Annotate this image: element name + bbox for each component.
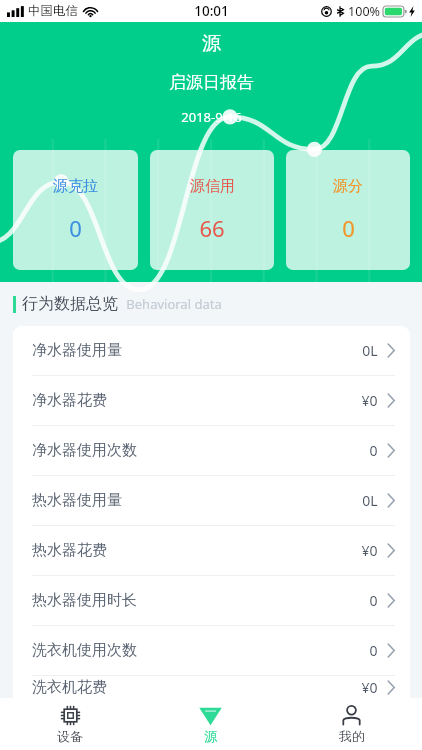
staticText: 净水器花费 bbox=[32, 391, 107, 410]
staticText: 2018-9-16 bbox=[181, 108, 242, 126]
button[interactable]: 源信用 bbox=[150, 150, 274, 270]
staticText: 净水器使用量 bbox=[32, 341, 122, 360]
staticText: 0L bbox=[362, 341, 378, 360]
staticText: Behavioral data bbox=[126, 295, 222, 313]
button[interactable]: 热水器花费 bbox=[13, 526, 410, 575]
other: 设备 bbox=[60, 705, 81, 726]
button[interactable]: 源克拉 bbox=[13, 150, 138, 270]
staticText: 0 bbox=[369, 441, 378, 460]
staticText: ¥0 bbox=[361, 678, 378, 697]
staticText: ¥0 bbox=[361, 391, 378, 410]
button[interactable]: 净水器花费 bbox=[13, 376, 410, 425]
staticText: 热水器使用量 bbox=[32, 491, 122, 510]
button[interactable]: 源 bbox=[140, 698, 281, 750]
staticText: 中国电信 bbox=[28, 3, 78, 19]
staticText: 0L bbox=[362, 491, 378, 510]
staticText: 洗衣机花费 bbox=[32, 678, 107, 697]
staticText: 源 bbox=[202, 32, 221, 56]
staticText: 源 bbox=[204, 728, 217, 744]
staticText: 10:01 bbox=[194, 2, 229, 20]
staticText: 启源日报告 bbox=[169, 72, 254, 93]
staticText: 净水器使用次数 bbox=[32, 441, 137, 460]
staticText: 热水器花费 bbox=[32, 541, 107, 560]
button[interactable]: 净水器使用次数 bbox=[13, 426, 410, 475]
staticText: 行为数据总览 bbox=[22, 294, 118, 314]
other: 源 bbox=[198, 705, 223, 726]
staticText: 源分 bbox=[333, 177, 363, 196]
button[interactable]: 净水器使用量 bbox=[13, 326, 410, 375]
staticText: 0 bbox=[342, 213, 355, 243]
button[interactable]: 我的 bbox=[281, 698, 422, 750]
button[interactable]: 设备 bbox=[0, 698, 140, 750]
staticText: 0 bbox=[369, 641, 378, 660]
staticText: 0 bbox=[69, 213, 82, 243]
staticText: 我的 bbox=[339, 728, 365, 744]
staticText: 热水器使用时长 bbox=[32, 591, 137, 610]
staticText: 66 bbox=[199, 213, 225, 243]
staticText: 源信用 bbox=[190, 177, 235, 196]
button[interactable]: 热水器使用时长 bbox=[13, 576, 410, 625]
staticText: 设备 bbox=[57, 728, 83, 744]
button[interactable]: 洗衣机使用次数 bbox=[13, 626, 410, 675]
staticText: 0 bbox=[369, 591, 378, 610]
staticText: ¥0 bbox=[361, 541, 378, 560]
staticText: 源克拉 bbox=[53, 177, 98, 196]
button[interactable]: 源分 bbox=[286, 150, 410, 270]
button[interactable]: 热水器使用量 bbox=[13, 476, 410, 525]
other: 我的 bbox=[341, 705, 362, 726]
staticText: 100% bbox=[348, 3, 380, 20]
staticText: 洗衣机使用次数 bbox=[32, 641, 137, 660]
button[interactable]: 洗衣机花费 bbox=[13, 676, 410, 698]
